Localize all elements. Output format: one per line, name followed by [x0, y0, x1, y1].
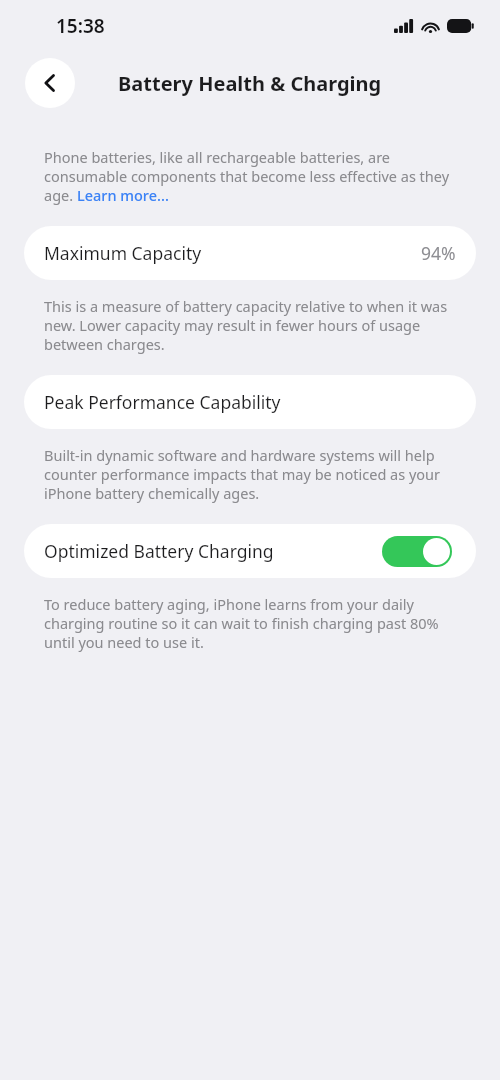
- button[interactable]: Optimized Battery Charging: [24, 524, 476, 578]
- staticText: Phone batteries, like all rechargeable b…: [44, 147, 456, 205]
- staticText: 94%: [421, 241, 456, 265]
- button[interactable]: Maximum Capacity: [24, 226, 476, 280]
- staticText: This is a measure of battery capacity re…: [44, 296, 456, 354]
- staticText: Peak Performance Capability: [44, 390, 281, 414]
- staticText: Optimized Battery Charging: [44, 539, 274, 563]
- staticText: Built-in dynamic software and hardware s…: [44, 445, 456, 503]
- button[interactable]: Back: [25, 58, 75, 108]
- button[interactable]: Optimized Battery Charging toggle, on: [382, 536, 452, 567]
- staticText: 15:38: [56, 13, 105, 39]
- staticText: Maximum Capacity: [44, 241, 202, 265]
- staticText: To reduce battery aging, iPhone learns f…: [44, 594, 456, 652]
- button[interactable]: Peak Performance Capability: [24, 375, 476, 429]
- staticText: Battery Health & Charging: [118, 70, 382, 97]
